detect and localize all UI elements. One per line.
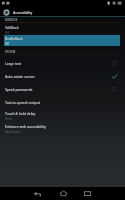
staticText: Large text [5,61,22,66]
button[interactable]: Speak passwords [110,85,119,94]
button[interactable]: TalkBack [4,24,120,36]
button[interactable]: Auto-rotate screen [4,70,120,83]
staticText: Short [5,117,12,121]
staticText: Off [5,31,9,35]
staticText: Speak passwords [5,87,33,92]
staticText: SERVICES [5,18,18,22]
button[interactable]: Large text [110,59,119,68]
staticText: SYSTEM [5,50,16,54]
staticText: Text-to-speech output [5,100,40,105]
button[interactable]: Settings [3,9,10,16]
button[interactable]: Enhance web accessibility [4,122,120,135]
staticText: Accessibility [13,10,33,15]
staticText: Auto-rotate screen [5,74,35,79]
button[interactable]: BrailleBack [4,35,120,46]
staticText: Not allowed [5,130,21,134]
button[interactable]: Recent apps [81,187,93,200]
staticText: BrailleBack [5,36,23,41]
staticText: Touch & hold delay [5,111,36,116]
staticText: Enhance web accessibility [5,124,46,129]
button[interactable]: Home [57,187,69,200]
button[interactable]: Speak passwords [4,83,120,96]
button[interactable]: Auto-rotate screen [110,72,119,81]
staticText: TalkBack [5,25,19,30]
button[interactable]: Touch & hold delay [4,109,120,122]
button[interactable]: Back [31,187,43,200]
staticText: Off [5,42,9,46]
button[interactable]: Text-to-speech output [4,96,120,109]
button[interactable]: Large text [4,57,120,70]
